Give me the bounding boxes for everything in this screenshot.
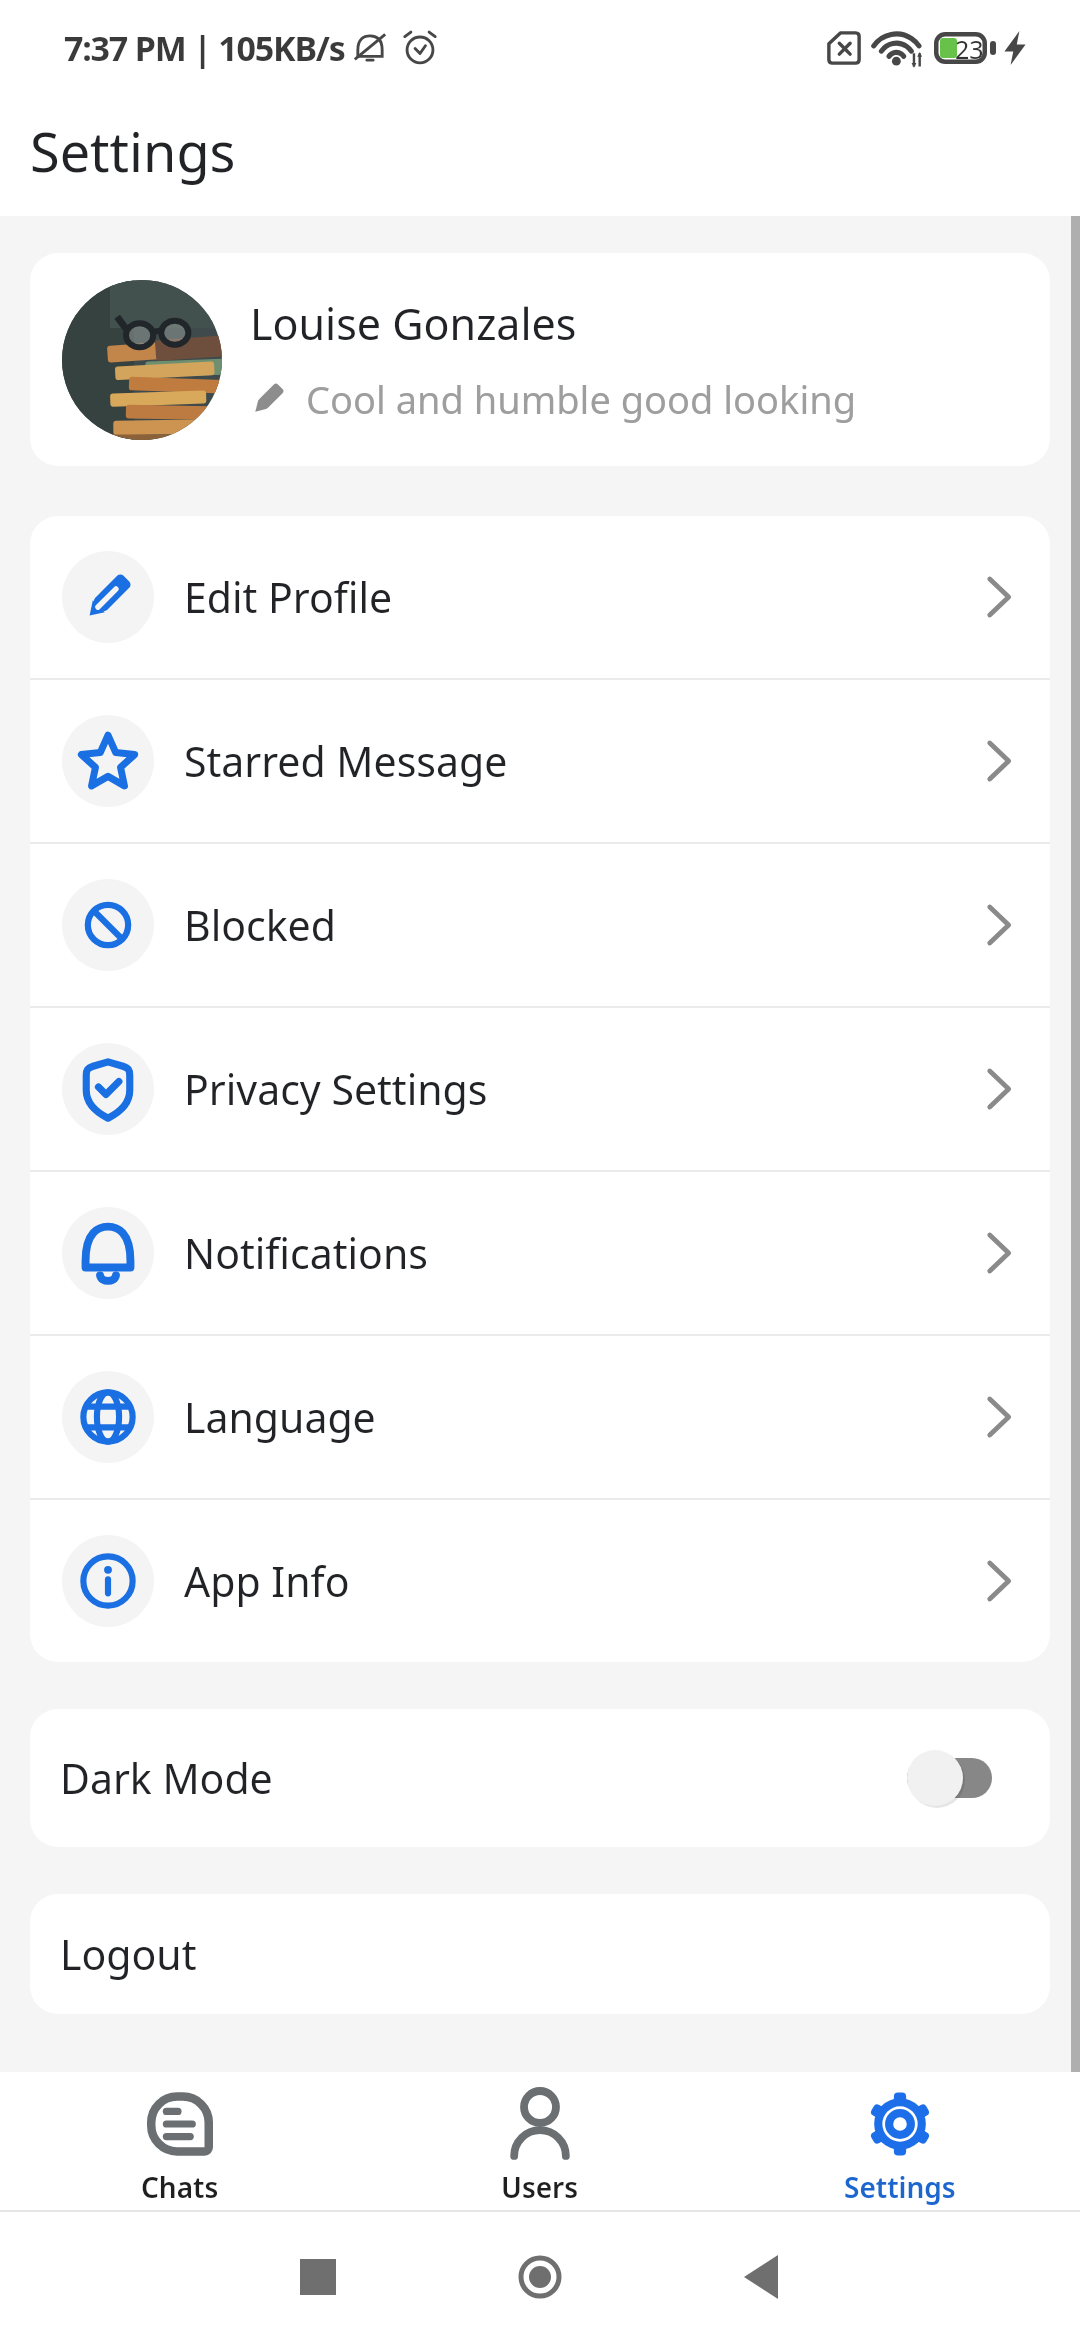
button[interactable]: Blocked bbox=[30, 844, 1050, 1006]
staticText: Blocked bbox=[184, 897, 336, 953]
staticText: Settings bbox=[844, 2168, 956, 2206]
button[interactable]: Users bbox=[360, 2072, 720, 2210]
button[interactable]: Edit Profile bbox=[30, 516, 1050, 678]
staticText: Louise Gonzales bbox=[250, 294, 577, 353]
button[interactable]: Dark Mode bbox=[30, 1709, 1050, 1847]
staticText: 7:37 PM | 105KB/s bbox=[64, 25, 345, 71]
button[interactable]: Louise Gonzales bbox=[30, 253, 1050, 466]
staticText: Privacy Settings bbox=[184, 1061, 488, 1117]
button[interactable]: Notifications bbox=[30, 1172, 1050, 1334]
button[interactable]: Chats bbox=[0, 2072, 360, 2210]
staticText: Users bbox=[501, 2168, 579, 2206]
staticText: Edit Profile bbox=[184, 569, 393, 625]
staticText: Cool and humble good looking bbox=[306, 373, 857, 425]
staticText: Starred Message bbox=[184, 733, 508, 789]
button[interactable]: Language bbox=[30, 1336, 1050, 1498]
button[interactable]: Privacy Settings bbox=[30, 1008, 1050, 1170]
staticText: Logout bbox=[60, 1926, 197, 1982]
staticText: App Info bbox=[184, 1553, 350, 1609]
staticText: Dark Mode bbox=[60, 1750, 273, 1806]
button[interactable]: Settings bbox=[720, 2072, 1080, 2210]
button[interactable]: App Info bbox=[30, 1500, 1050, 1662]
staticText: Settings bbox=[30, 114, 236, 188]
staticText: Notifications bbox=[184, 1225, 428, 1281]
staticText: 23 bbox=[955, 32, 984, 64]
button[interactable]: Logout bbox=[30, 1894, 1050, 2014]
staticText: Chats bbox=[141, 2168, 219, 2206]
button[interactable]: Starred Message bbox=[30, 680, 1050, 842]
staticText: Language bbox=[184, 1389, 376, 1445]
